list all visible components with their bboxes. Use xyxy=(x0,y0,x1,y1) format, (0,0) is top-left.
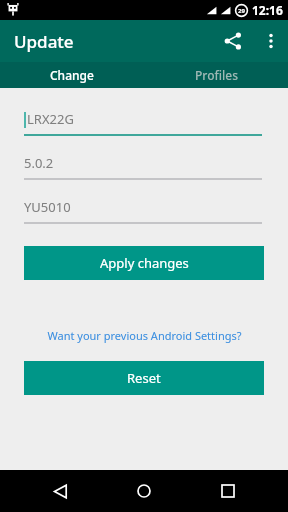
staticText: 5.0.2 xyxy=(24,154,54,172)
staticText: Apply changes xyxy=(100,254,189,272)
button[interactable]: Change xyxy=(0,62,144,88)
button[interactable]: Recent apps xyxy=(204,470,252,512)
button[interactable]: LRX22G xyxy=(24,110,262,136)
staticText: Want your previous Android Settings? xyxy=(47,328,242,343)
staticText: Change xyxy=(50,67,94,83)
button[interactable]: YU5010 xyxy=(24,198,262,224)
staticText: 29 xyxy=(238,7,245,15)
staticText: Reset xyxy=(127,369,161,387)
staticText: 12:16 xyxy=(252,2,283,18)
button[interactable]: Reset xyxy=(24,361,264,395)
button[interactable]: Home xyxy=(120,470,168,512)
button[interactable]: Profiles xyxy=(144,62,288,88)
staticText: Profiles xyxy=(195,67,238,83)
staticText: YU5010 xyxy=(24,198,71,216)
button[interactable]: Back xyxy=(36,470,84,512)
staticText: Update xyxy=(14,30,74,53)
button[interactable]: Share xyxy=(212,20,254,62)
button[interactable]: 5.0.2 xyxy=(24,154,262,180)
button[interactable]: Want your previous Android Settings? xyxy=(0,325,288,345)
staticText: LRX22G xyxy=(27,110,74,128)
button[interactable]: More options xyxy=(254,24,288,58)
button[interactable]: Apply changes xyxy=(24,246,264,280)
